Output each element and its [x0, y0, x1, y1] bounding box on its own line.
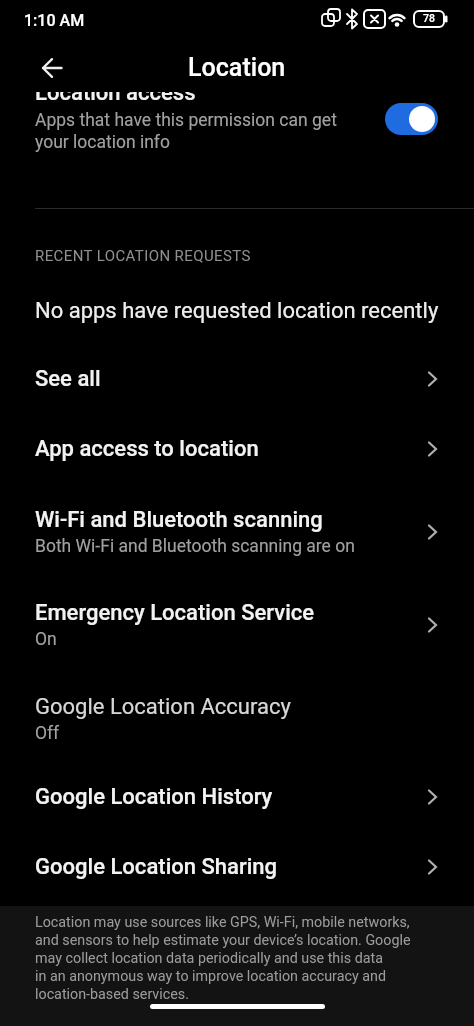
- staticText: Google Location Accuracy: [35, 694, 291, 720]
- button[interactable]: [385, 103, 438, 135]
- staticText: No apps have requested location recently: [35, 298, 439, 324]
- button[interactable]: See all: [0, 344, 474, 414]
- staticText: 78: [414, 12, 444, 24]
- staticText: Location access: [35, 80, 196, 106]
- staticText: Emergency Location Service: [35, 600, 315, 626]
- staticText: Apps that have this permission can get y…: [35, 110, 370, 152]
- button[interactable]: Google Location Sharing: [0, 832, 474, 902]
- staticText: 1:10 AM: [24, 11, 85, 30]
- staticText: App access to location: [35, 436, 259, 462]
- button[interactable]: Wi-Fi and Bluetooth scanning: [0, 488, 474, 576]
- button[interactable]: Emergency Location Service: [0, 581, 474, 669]
- staticText: Google Location Sharing: [35, 854, 277, 880]
- staticText: Off: [35, 723, 60, 744]
- staticText: Google Location History: [35, 784, 273, 810]
- button[interactable]: App access to location: [0, 414, 474, 484]
- button[interactable]: [30, 46, 74, 90]
- staticText: RECENT LOCATION REQUESTS: [35, 247, 251, 265]
- staticText: Location: [188, 53, 286, 82]
- button[interactable]: Google Location History: [0, 762, 474, 832]
- staticText: Location may use sources like GPS, Wi-Fi…: [35, 914, 411, 1003]
- staticText: Wi-Fi and Bluetooth scanning: [35, 507, 323, 533]
- staticText: See all: [35, 366, 101, 392]
- staticText: On: [35, 629, 57, 650]
- button[interactable]: Google Location Accuracy: [0, 675, 474, 763]
- staticText: Both Wi-Fi and Bluetooth scanning are on: [35, 536, 355, 557]
